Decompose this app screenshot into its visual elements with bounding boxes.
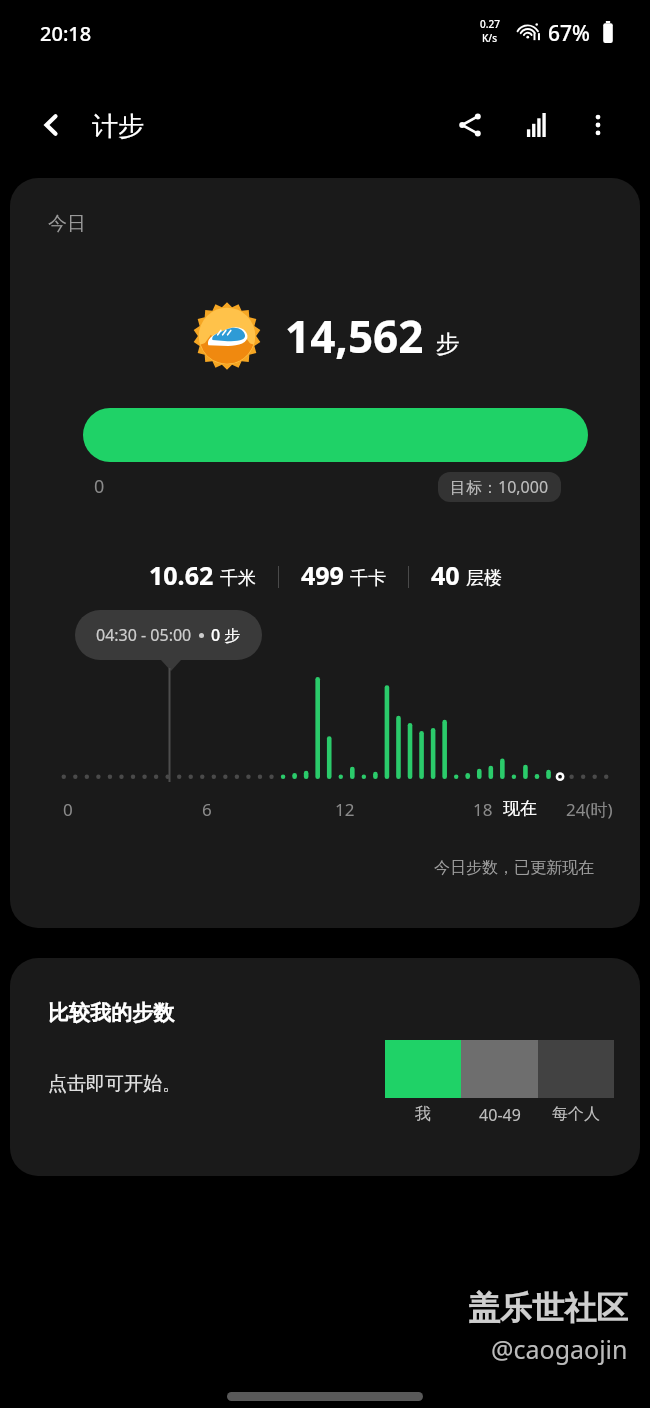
staticText: @caogaojin: [491, 1332, 628, 1366]
staticText: 0.27: [480, 17, 500, 31]
staticText: 今日步数，已更新现在: [434, 858, 594, 878]
staticText: 层楼: [466, 567, 502, 590]
staticText: 6: [202, 798, 212, 821]
staticText: 0: [63, 798, 73, 821]
staticText: 40-49: [479, 1104, 521, 1126]
staticText: 0: [94, 474, 105, 499]
staticText: 24(时): [566, 798, 613, 821]
staticText: 千米: [220, 567, 256, 590]
staticText: 12: [335, 798, 355, 821]
button[interactable]: Share: [446, 101, 494, 149]
staticText: 目标：10,000: [450, 476, 549, 498]
staticText: K/s: [482, 31, 498, 45]
staticText: 千卡: [350, 567, 386, 590]
staticText: 40: [431, 558, 460, 592]
staticText: 今日: [48, 212, 86, 236]
staticText: 14,562: [285, 306, 424, 366]
staticText: 我: [415, 1104, 431, 1124]
staticText: 比较我的步数: [48, 1000, 174, 1026]
button[interactable]: Trends: [513, 101, 561, 149]
staticText: 18: [473, 798, 493, 821]
button[interactable]: Back: [28, 101, 76, 149]
staticText: 67%: [548, 19, 590, 48]
staticText: 10.62: [149, 558, 214, 592]
staticText: 步: [436, 329, 460, 359]
staticText: 04:30 - 05:00: [96, 624, 192, 646]
staticText: 计步: [92, 110, 144, 143]
staticText: 0 步: [211, 624, 241, 646]
staticText: 盖乐世社区: [468, 1288, 628, 1328]
button[interactable]: More options: [574, 101, 622, 149]
staticText: 点击即可开始。: [48, 1072, 181, 1096]
button[interactable]: 比较我的步数: [10, 958, 640, 1176]
staticText: 现在: [503, 798, 537, 819]
staticText: 499: [301, 558, 344, 592]
staticText: 每个人: [552, 1104, 600, 1124]
button[interactable]: 今日: [10, 178, 640, 928]
staticText: 20:18: [40, 20, 92, 47]
